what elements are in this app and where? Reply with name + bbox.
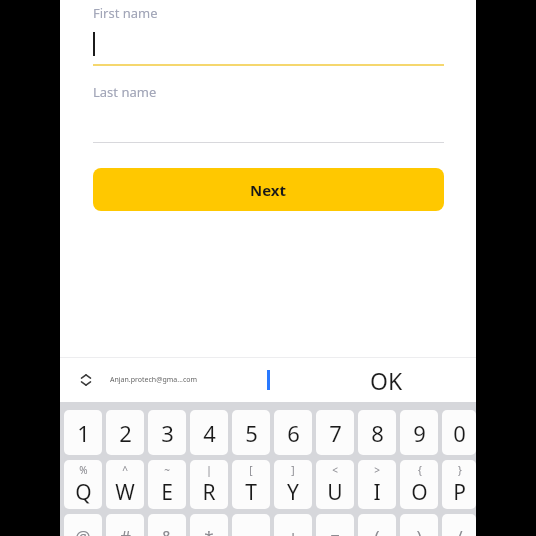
staticText: { xyxy=(418,463,422,477)
staticText: E xyxy=(161,478,173,507)
button[interactable]: OK xyxy=(356,362,416,398)
staticText: I xyxy=(373,478,381,507)
staticText: > xyxy=(374,463,380,477)
staticText: [ xyxy=(249,463,253,477)
button[interactable]: ) xyxy=(400,514,438,536)
button[interactable]: / xyxy=(442,514,476,536)
staticText: = xyxy=(330,525,340,536)
button[interactable]: > xyxy=(358,460,396,509)
button[interactable]: < xyxy=(316,460,354,509)
staticText: ] xyxy=(291,463,295,477)
staticText: 7 xyxy=(329,418,342,448)
button[interactable]: @ xyxy=(64,514,102,536)
button[interactable]: Expand suggestions xyxy=(72,366,100,394)
button[interactable]: ( xyxy=(358,514,396,536)
button[interactable]: | xyxy=(190,460,228,509)
staticText: 1 xyxy=(77,418,90,448)
staticText: P xyxy=(453,478,466,507)
staticText: Y xyxy=(287,478,299,507)
staticText: OK xyxy=(370,365,403,396)
staticText: < xyxy=(332,463,338,477)
button[interactable]: 2 xyxy=(106,410,144,455)
button[interactable]: 8 xyxy=(358,410,396,455)
button[interactable]: 9 xyxy=(400,410,438,455)
button[interactable]: = xyxy=(316,514,354,536)
button[interactable]: ] xyxy=(274,460,312,509)
staticText: 8 xyxy=(371,418,384,448)
button[interactable]: # xyxy=(106,514,144,536)
staticText: | xyxy=(206,463,212,477)
button[interactable]: 5 xyxy=(232,410,270,455)
staticText: / xyxy=(456,525,463,536)
staticText: 9 xyxy=(413,418,426,448)
button[interactable]: - xyxy=(232,514,270,536)
staticText: 4 xyxy=(203,418,216,448)
button[interactable]: } xyxy=(442,460,476,509)
staticText: O xyxy=(411,478,428,507)
staticText: # xyxy=(120,525,131,536)
staticText: First name xyxy=(93,4,158,22)
staticText: ( xyxy=(374,525,380,536)
button[interactable]: 6 xyxy=(274,410,312,455)
staticText: 0 xyxy=(453,418,466,448)
button[interactable]: [ xyxy=(232,460,270,509)
button[interactable]: First name xyxy=(93,2,444,66)
staticText: 2 xyxy=(119,418,132,448)
button[interactable]: ^ xyxy=(106,460,144,509)
button[interactable]: { xyxy=(400,460,438,509)
button[interactable]: Anjan.protech@gma...com xyxy=(110,368,198,392)
staticText: * xyxy=(204,525,214,536)
button[interactable]: Next xyxy=(93,168,444,211)
staticText: @ xyxy=(75,525,91,536)
button[interactable]: * xyxy=(190,514,228,536)
button[interactable]: 3 xyxy=(148,410,186,455)
button[interactable]: 1 xyxy=(64,410,102,455)
staticText: U xyxy=(327,478,343,507)
staticText: W xyxy=(115,478,135,507)
staticText: ~ xyxy=(164,463,170,477)
button[interactable]: Last name xyxy=(93,81,444,145)
staticText: & xyxy=(161,525,174,536)
button[interactable]: 4 xyxy=(190,410,228,455)
staticText: ) xyxy=(416,525,422,536)
staticText: ^ xyxy=(122,463,128,477)
button[interactable]: + xyxy=(274,514,312,536)
staticText: R xyxy=(202,478,216,507)
staticText: T xyxy=(245,478,257,507)
staticText: Q xyxy=(75,478,92,507)
staticText: Next xyxy=(250,180,287,200)
button[interactable]: 7 xyxy=(316,410,354,455)
button[interactable]: ~ xyxy=(148,460,186,509)
button[interactable]: & xyxy=(148,514,186,536)
staticText: 3 xyxy=(161,418,174,448)
staticText: 5 xyxy=(245,418,258,448)
staticText: Anjan.protech@gma...com xyxy=(110,375,198,385)
staticText: 6 xyxy=(287,418,300,448)
button[interactable]: % xyxy=(64,460,102,509)
staticText: % xyxy=(79,463,88,477)
button[interactable]: 0 xyxy=(442,410,476,455)
staticText: + xyxy=(288,525,298,536)
staticText: } xyxy=(458,463,462,477)
staticText: Last name xyxy=(93,83,157,101)
